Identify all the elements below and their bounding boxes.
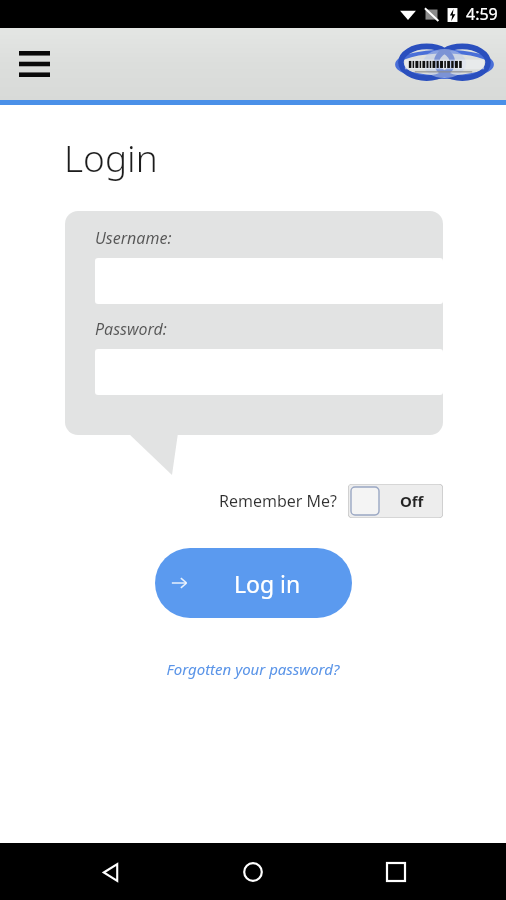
staticText: Password: <box>95 318 167 340</box>
button[interactable]: Remember Me toggle, Off <box>348 484 443 518</box>
button[interactable]: Back <box>77 848 143 896</box>
staticText: 4:59 <box>466 3 498 25</box>
button[interactable]: Recent apps <box>363 848 429 896</box>
button[interactable]: Open navigation menu <box>14 44 54 84</box>
staticText: Remember Me? <box>219 490 338 512</box>
staticText: Log in <box>234 568 301 599</box>
button[interactable]: Infinitely People logo <box>395 42 494 86</box>
staticText: Forgotten your password? <box>0 659 506 679</box>
button[interactable]: Forgotten your password? <box>0 654 506 684</box>
button[interactable]: Log in <box>155 548 352 618</box>
staticText: Login <box>64 132 158 182</box>
button[interactable]: Home <box>220 848 286 896</box>
staticText: Username: <box>95 227 172 249</box>
staticText: Off <box>400 491 424 511</box>
